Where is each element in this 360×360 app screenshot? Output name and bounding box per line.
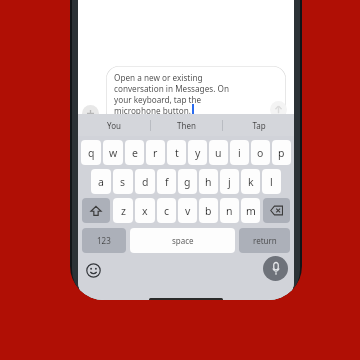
staticText: 123 [97,235,111,246]
staticText: space [172,235,194,246]
button[interactable]: t [167,140,186,165]
button[interactable]: f [157,169,176,194]
staticText: e [132,146,138,160]
button[interactable]: Open a new or existing [106,66,286,124]
staticText: t [175,146,179,160]
button[interactable]: v [178,198,197,223]
button[interactable]: x [135,198,155,223]
staticText: conversation in Messages. On [114,83,229,94]
button[interactable]: Then [151,114,222,136]
staticText: g [184,175,191,189]
button[interactable]: b [199,198,218,223]
button[interactable]: Tap [223,114,294,136]
button[interactable]: Add attachment [82,105,99,122]
button[interactable]: You [78,114,150,136]
button[interactable]: a [91,169,111,194]
button[interactable]: z [113,198,133,223]
staticText: microphone button. [114,105,191,116]
button[interactable]: Dictate with microphone [171,119,199,137]
staticText: m [246,204,256,218]
button[interactable]: i [230,140,249,165]
button[interactable]: y [188,140,207,165]
staticText: o [257,146,264,160]
button[interactable]: return [239,228,290,253]
button[interactable]: j [220,169,239,194]
staticText: f [165,175,169,189]
button[interactable]: s [113,169,133,194]
staticText: w [109,146,118,160]
staticText: Open a new or existing [114,72,203,83]
staticText: r [153,146,158,160]
button[interactable]: o [251,140,270,165]
button[interactable]: Shift [82,198,110,223]
button[interactable]: q [81,140,101,165]
button[interactable]: Voice input [263,256,288,281]
button[interactable]: n [220,198,239,223]
staticText: c [164,204,170,218]
button[interactable]: u [209,140,228,165]
staticText: p [278,146,285,160]
button[interactable]: k [241,169,260,194]
button[interactable]: w [103,140,123,165]
staticText: h [205,175,212,189]
staticText: b [205,204,212,218]
staticText: d [142,175,149,189]
staticText: Then [177,120,196,131]
button[interactable]: p [272,140,291,165]
staticText: x [142,204,148,218]
button[interactable]: h [199,169,218,194]
staticText: q [88,146,95,160]
staticText: return [253,235,277,246]
staticText: You [107,120,121,131]
staticText: Tap [252,120,266,131]
staticText: your keyboard, tap the [114,94,202,105]
button[interactable]: l [262,169,281,194]
staticText: j [228,175,231,189]
staticText: n [226,204,233,218]
staticText: s [120,175,126,189]
button[interactable]: e [125,140,144,165]
button[interactable]: 123 [82,228,126,253]
button[interactable]: Backspace [263,198,290,223]
button[interactable]: g [178,169,197,194]
button[interactable]: space [130,228,235,253]
staticText: z [121,204,126,218]
staticText: k [248,175,254,189]
staticText: u [215,146,222,160]
staticText: l [270,175,273,189]
button[interactable]: r [146,140,165,165]
staticText: i [238,146,241,160]
button[interactable]: Emoji keyboard [83,260,103,280]
button[interactable]: d [135,169,155,194]
staticText: v [185,204,191,218]
staticText: a [98,175,104,189]
staticText: y [195,146,201,160]
button[interactable]: m [241,198,260,223]
button[interactable]: c [157,198,176,223]
button[interactable]: Send [270,101,287,118]
